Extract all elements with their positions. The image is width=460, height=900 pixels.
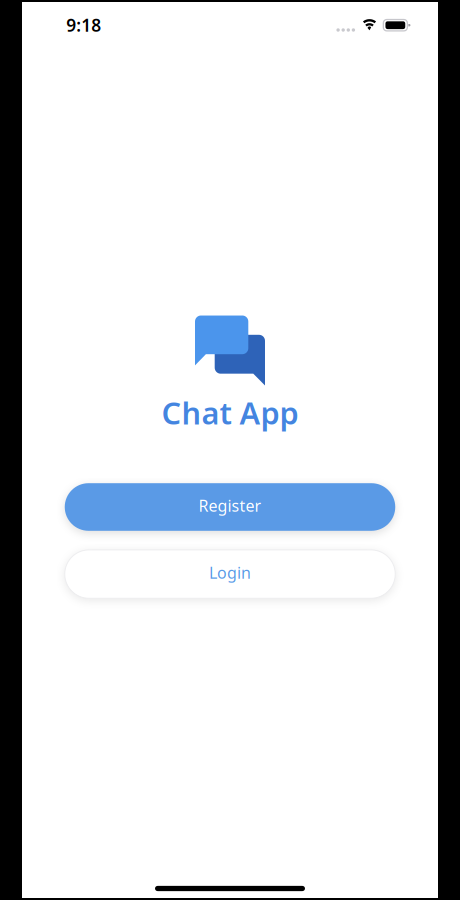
- button[interactable]: Register: [65, 483, 395, 531]
- staticText: Register: [198, 495, 261, 516]
- staticText: Login: [209, 562, 251, 583]
- staticText: 9:18: [66, 14, 101, 37]
- staticText: Chat App: [161, 392, 298, 433]
- button[interactable]: Login: [65, 550, 395, 598]
